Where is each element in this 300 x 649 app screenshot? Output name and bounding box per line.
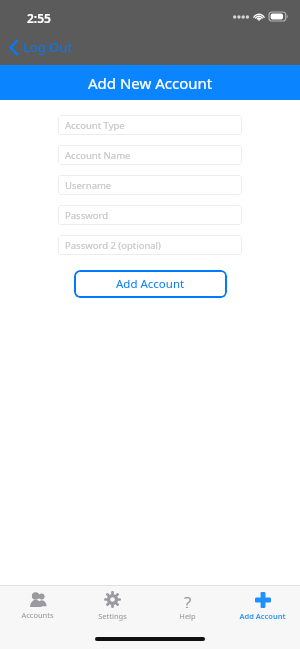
button[interactable]: Password 2 (optional) [58, 235, 242, 255]
button[interactable]: Settings [75, 586, 150, 626]
button[interactable]: Add Account [225, 586, 300, 626]
button[interactable]: Log Out [6, 36, 76, 58]
staticText: Username [65, 179, 112, 192]
staticText: Account Type [65, 119, 125, 132]
staticText: Help [179, 611, 196, 621]
staticText: ? [184, 591, 192, 608]
button[interactable]: Help [150, 586, 225, 626]
staticText: Log Out [23, 38, 72, 56]
button[interactable]: Username [58, 175, 242, 195]
staticText: Add Account [116, 276, 185, 292]
staticText: Password 2 (optional) [65, 239, 161, 252]
button[interactable]: Add Account [74, 270, 227, 298]
other: Add Account [255, 592, 271, 608]
button[interactable]: Account Type [58, 115, 242, 135]
other: Settings [104, 591, 121, 608]
staticText: 2:55 [27, 10, 51, 26]
staticText: Add New Account [88, 73, 213, 93]
staticText: Password [65, 209, 108, 222]
button[interactable]: Accounts [0, 586, 75, 626]
staticText: Settings [98, 611, 127, 621]
other: Accounts [28, 592, 48, 607]
staticText: Account Name [65, 149, 131, 162]
staticText: Add Account [239, 611, 286, 621]
button[interactable]: Account Name [58, 145, 242, 165]
button[interactable]: Password [58, 205, 242, 225]
other: Help [179, 591, 196, 608]
staticText: Accounts [21, 610, 54, 620]
